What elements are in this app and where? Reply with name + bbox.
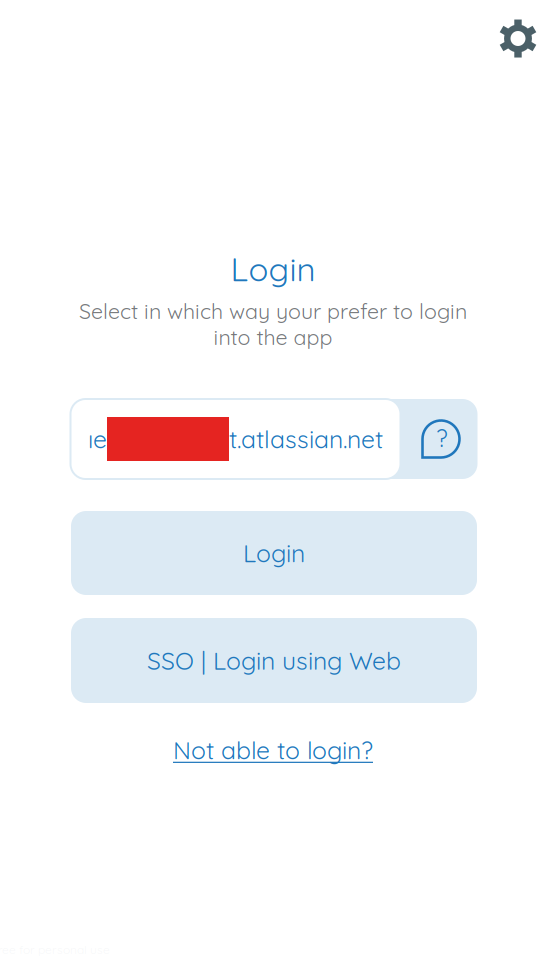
- button[interactable]: Settings: [491, 11, 545, 65]
- button[interactable]: Login: [71, 511, 477, 595]
- button[interactable]: SSO | Login using Web: [71, 618, 477, 703]
- button[interactable]: Not able to login?: [173, 728, 373, 772]
- staticText: SSO | Login using Web: [147, 645, 401, 676]
- staticText: ?: [436, 423, 448, 453]
- staticText: Not able to login?: [173, 735, 373, 765]
- staticText: ıe: [88, 424, 107, 454]
- staticText: Select in which way your prefer to login: [79, 298, 467, 324]
- button[interactable]: Help: [400, 399, 477, 479]
- staticText: into the app: [213, 324, 332, 350]
- staticText: t.atlassian.net: [229, 424, 383, 454]
- staticText: Login: [243, 538, 305, 568]
- staticText: Login: [230, 248, 315, 290]
